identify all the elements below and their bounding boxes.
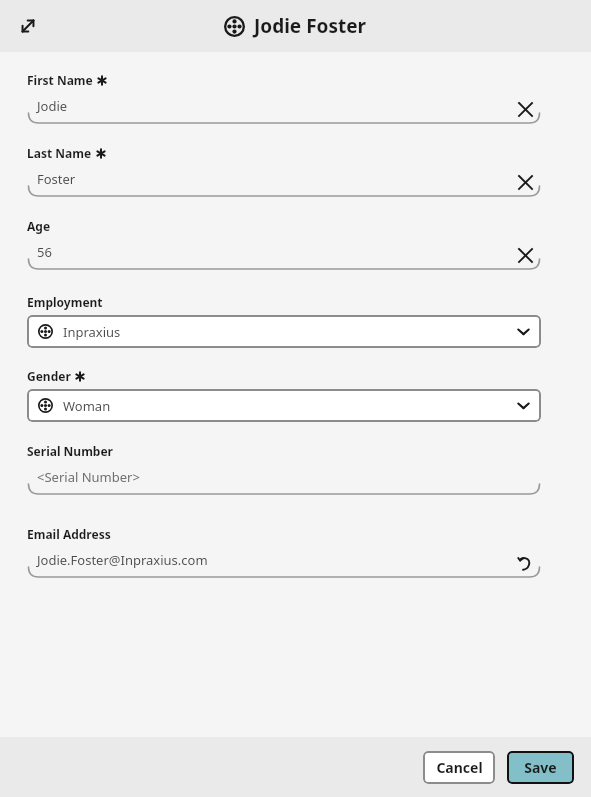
button[interactable]: Cancel xyxy=(423,751,495,784)
staticText: Jodie xyxy=(37,97,68,115)
button[interactable]: 56 xyxy=(27,237,541,273)
staticText: Inpraxius xyxy=(63,323,121,341)
staticText: Foster xyxy=(37,170,76,188)
staticText: Last Name xyxy=(27,145,92,161)
button[interactable]: Jodie xyxy=(27,91,541,127)
staticText: First Name xyxy=(27,72,93,88)
staticText: Email Address xyxy=(27,526,111,542)
button[interactable]: Jodie.Foster@Inpraxius.com xyxy=(27,545,541,581)
button[interactable]: Woman xyxy=(27,389,541,422)
button[interactable]: Inpraxius xyxy=(27,315,541,348)
staticText: <Serial Number> xyxy=(37,468,140,486)
button[interactable]: Save xyxy=(507,751,574,784)
button[interactable]: Expand xyxy=(13,11,43,41)
button[interactable]: Undo xyxy=(513,551,537,575)
staticText: Jodie.Foster@Inpraxius.com xyxy=(37,551,208,569)
staticText: 56 xyxy=(37,243,52,261)
button[interactable]: <Serial Number> xyxy=(27,462,541,498)
button[interactable]: Clear xyxy=(513,243,537,267)
staticText: Age xyxy=(27,218,51,234)
staticText: Gender xyxy=(27,368,71,384)
staticText: Jodie Foster xyxy=(254,13,367,39)
staticText: Cancel xyxy=(436,758,483,777)
button[interactable]: Clear xyxy=(513,170,537,194)
staticText: Woman xyxy=(63,397,111,415)
staticText: Save xyxy=(524,758,557,777)
button[interactable]: Clear xyxy=(513,97,537,121)
staticText: Employment xyxy=(27,294,103,310)
button[interactable]: Foster xyxy=(27,164,541,200)
staticText: Serial Number xyxy=(27,443,113,459)
